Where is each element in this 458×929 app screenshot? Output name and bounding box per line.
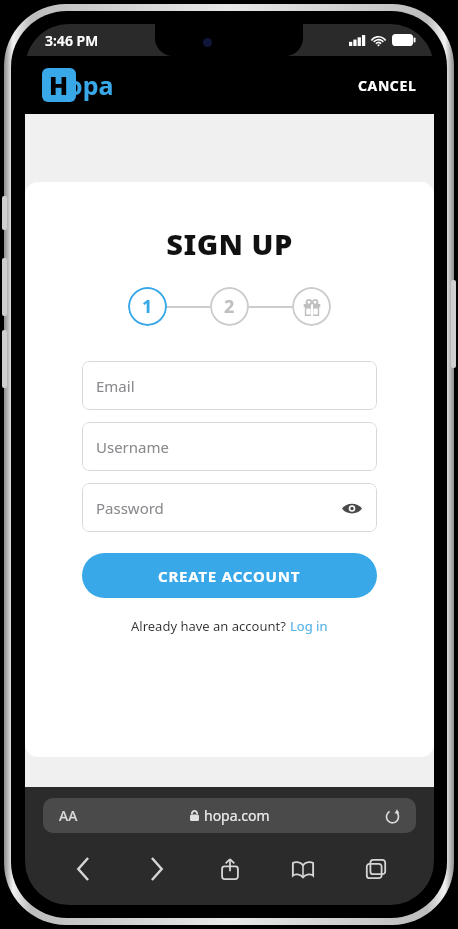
button[interactable]: Step: [292, 287, 331, 326]
button[interactable]: Show password: [337, 493, 367, 523]
staticText: 1: [142, 294, 153, 319]
staticText: opa: [67, 68, 114, 102]
staticText: hopa.com: [204, 806, 270, 825]
button[interactable]: Hopa home: [42, 68, 123, 102]
staticText: Log in: [290, 617, 328, 635]
button[interactable]: Back: [47, 849, 120, 889]
button[interactable]: Log in: [290, 617, 328, 635]
staticText: H: [49, 68, 69, 102]
button[interactable]: Email: [82, 361, 377, 410]
button[interactable]: Step: [210, 287, 249, 326]
staticText: Email: [96, 376, 135, 396]
button[interactable]: Bookmarks: [266, 849, 339, 889]
button[interactable]: Step 1: [128, 287, 167, 326]
button[interactable]: Username: [82, 422, 377, 471]
staticText: 3:46 PM: [45, 31, 99, 50]
staticText: CREATE ACCOUNT: [158, 566, 301, 586]
button[interactable]: CREATE ACCOUNT: [82, 553, 377, 598]
staticText: SIGN UP: [166, 224, 293, 263]
button[interactable]: Reload: [381, 805, 403, 827]
button[interactable]: Password: [82, 483, 377, 532]
staticText: Already have an account?: [131, 617, 290, 635]
staticText: AA: [59, 806, 78, 825]
button[interactable]: AA: [43, 798, 416, 833]
staticText: Password: [96, 498, 164, 518]
button[interactable]: CANCEL: [341, 66, 434, 105]
staticText: 2: [224, 294, 235, 319]
button[interactable]: Forward: [120, 849, 193, 889]
button[interactable]: Share: [193, 849, 266, 889]
button[interactable]: Tabs: [339, 849, 412, 889]
staticText: CANCEL: [358, 76, 417, 95]
staticText: Username: [96, 437, 169, 457]
